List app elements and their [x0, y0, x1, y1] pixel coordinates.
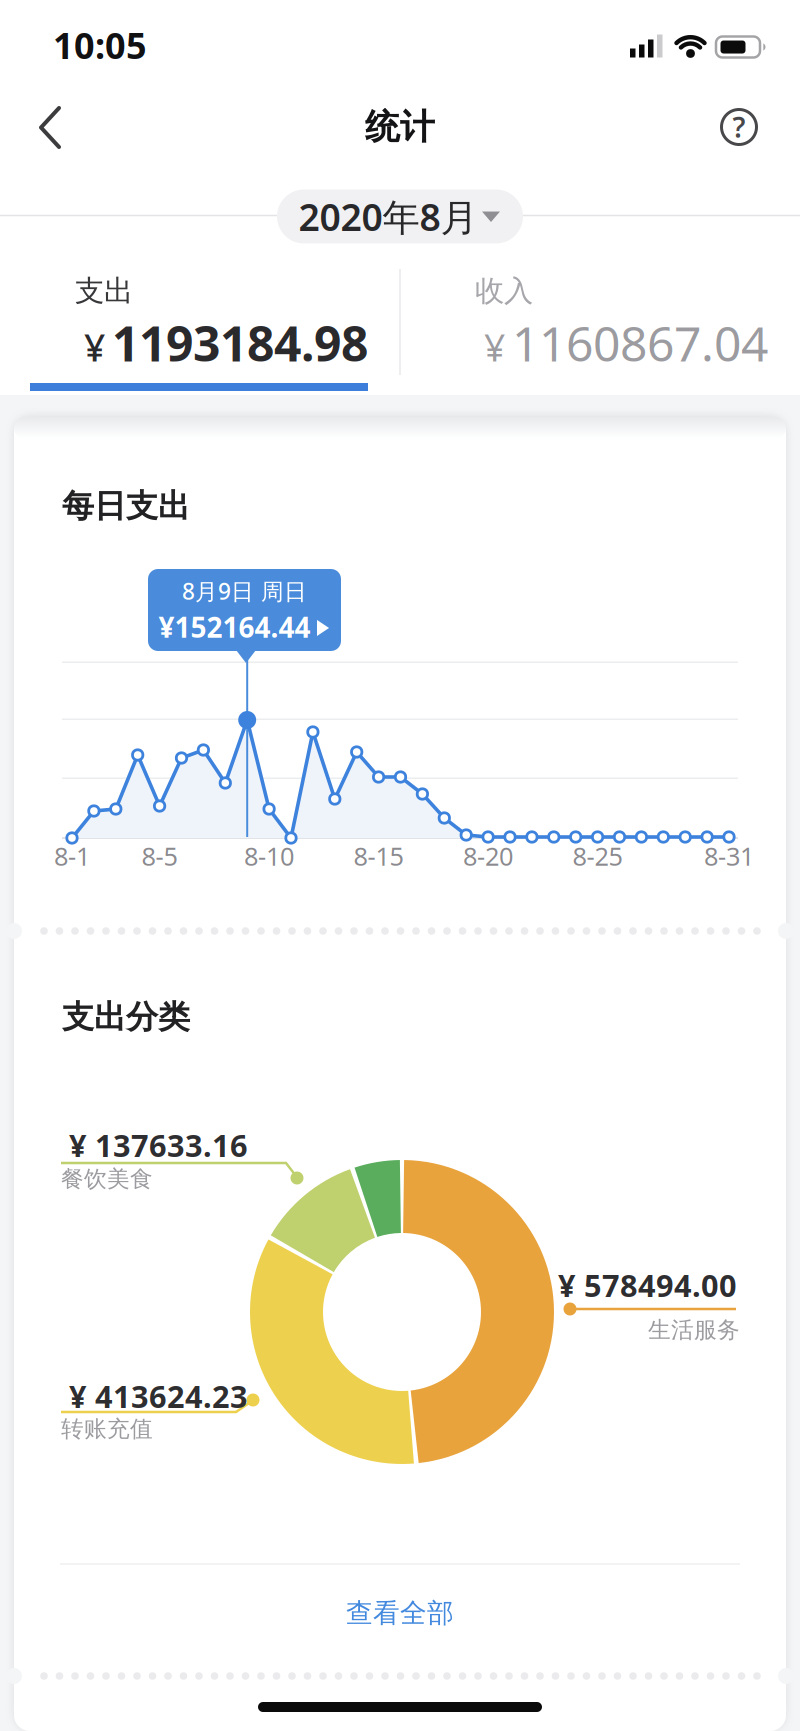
staticText: 8-10 [244, 839, 294, 873]
staticText: 8-31 [704, 839, 754, 873]
button[interactable]: 8月9日 周日 [144, 564, 344, 664]
staticText: 餐饮美食 [61, 1165, 153, 1193]
staticText: 8-25 [573, 839, 623, 873]
staticText: 支出分类 [62, 997, 190, 1037]
staticText: 1193184.98 [112, 311, 368, 375]
button[interactable]: 2020年8月 [277, 189, 523, 243]
staticText: 2020年8月 [298, 192, 477, 241]
staticText: 查看全部 [346, 1597, 454, 1629]
button[interactable]: Back [28, 99, 72, 155]
button[interactable]: 查看全部 [280, 1583, 520, 1643]
staticText: 8-5 [142, 839, 178, 873]
staticText: ¥ [84, 322, 105, 372]
staticText: 8-15 [354, 839, 404, 873]
staticText: 8月9日 周日 [182, 576, 307, 606]
staticText: 每日支出 [62, 486, 190, 526]
button[interactable]: Help [717, 105, 761, 149]
staticText: 1160867.04 [512, 311, 768, 375]
staticText: 8-1 [54, 839, 90, 873]
staticText: ? [732, 108, 745, 146]
staticText: 10:05 [53, 21, 147, 69]
button[interactable]: 支出 [0, 247, 400, 395]
staticText: 转账充值 [61, 1415, 153, 1443]
staticText: 统计 [365, 106, 435, 148]
staticText: ¥ [484, 322, 505, 372]
staticText: 收入 [475, 273, 533, 309]
staticText: ¥ 137633.16 [69, 1125, 248, 1165]
staticText: 8-20 [463, 839, 513, 873]
staticText: 支出 [75, 273, 133, 309]
staticText: ¥ 413624.23 [69, 1376, 248, 1416]
staticText: ¥152164.44 [158, 608, 310, 646]
button[interactable]: 收入 [400, 247, 800, 395]
staticText: ¥ 578494.00 [558, 1265, 737, 1305]
staticText: 生活服务 [648, 1316, 740, 1344]
